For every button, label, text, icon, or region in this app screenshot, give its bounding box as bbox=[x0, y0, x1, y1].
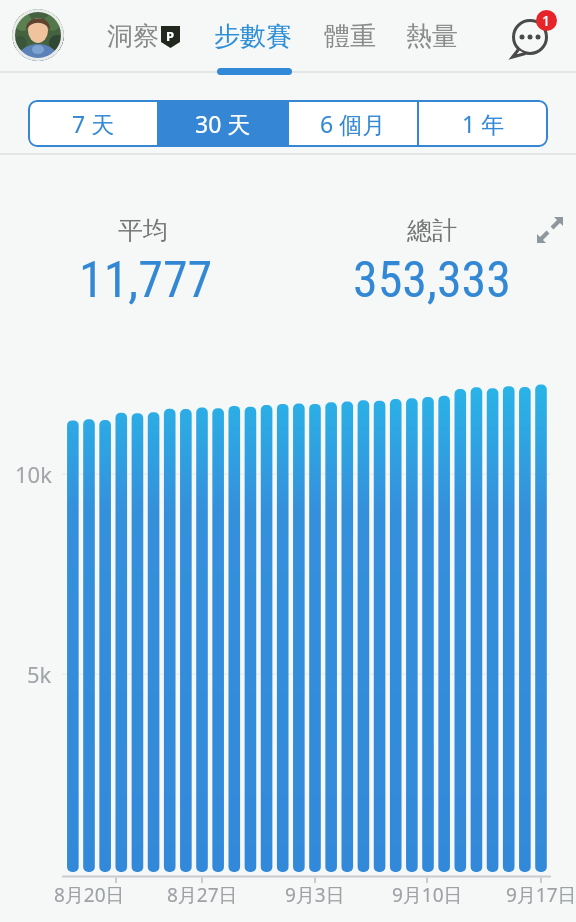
staticText: 6 個月 bbox=[320, 108, 386, 139]
button[interactable] bbox=[536, 216, 564, 244]
staticText: 1 年 bbox=[462, 108, 505, 139]
staticText: 洞察 bbox=[107, 20, 159, 53]
staticText: 11,777 bbox=[79, 251, 213, 307]
staticText: 9月3日 bbox=[285, 882, 345, 908]
button[interactable]: 6 個月 bbox=[293, 106, 413, 140]
staticText: 9月10日 bbox=[392, 882, 463, 908]
button[interactable]: 1 年 bbox=[423, 106, 543, 140]
staticText: 1 bbox=[542, 11, 551, 30]
staticText: 步數賽 bbox=[214, 20, 292, 53]
button[interactable]: 7 天 bbox=[33, 106, 153, 140]
staticText: 7 天 bbox=[72, 108, 115, 139]
button[interactable]: 步數賽 bbox=[203, 19, 303, 53]
staticText: 平均 bbox=[118, 215, 168, 246]
staticText: P bbox=[166, 27, 175, 45]
button[interactable]: 熱量 bbox=[392, 19, 472, 53]
staticText: 9月17日 bbox=[506, 882, 576, 908]
button[interactable]: 1 bbox=[505, 10, 563, 66]
staticText: 5k bbox=[27, 659, 52, 685]
staticText: 10k bbox=[15, 459, 52, 485]
staticText: 體重 bbox=[324, 20, 376, 53]
button[interactable]: 體重 bbox=[310, 19, 390, 53]
button[interactable] bbox=[12, 9, 64, 61]
button[interactable]: 30 天 bbox=[163, 106, 283, 140]
staticText: 353,333 bbox=[353, 251, 511, 307]
staticText: 總計 bbox=[407, 215, 457, 246]
staticText: 8月27日 bbox=[167, 882, 238, 908]
staticText: 30 天 bbox=[195, 108, 251, 139]
staticText: 8月20日 bbox=[54, 882, 125, 908]
button[interactable]: 洞察 bbox=[93, 19, 173, 53]
staticText: 熱量 bbox=[406, 20, 458, 53]
